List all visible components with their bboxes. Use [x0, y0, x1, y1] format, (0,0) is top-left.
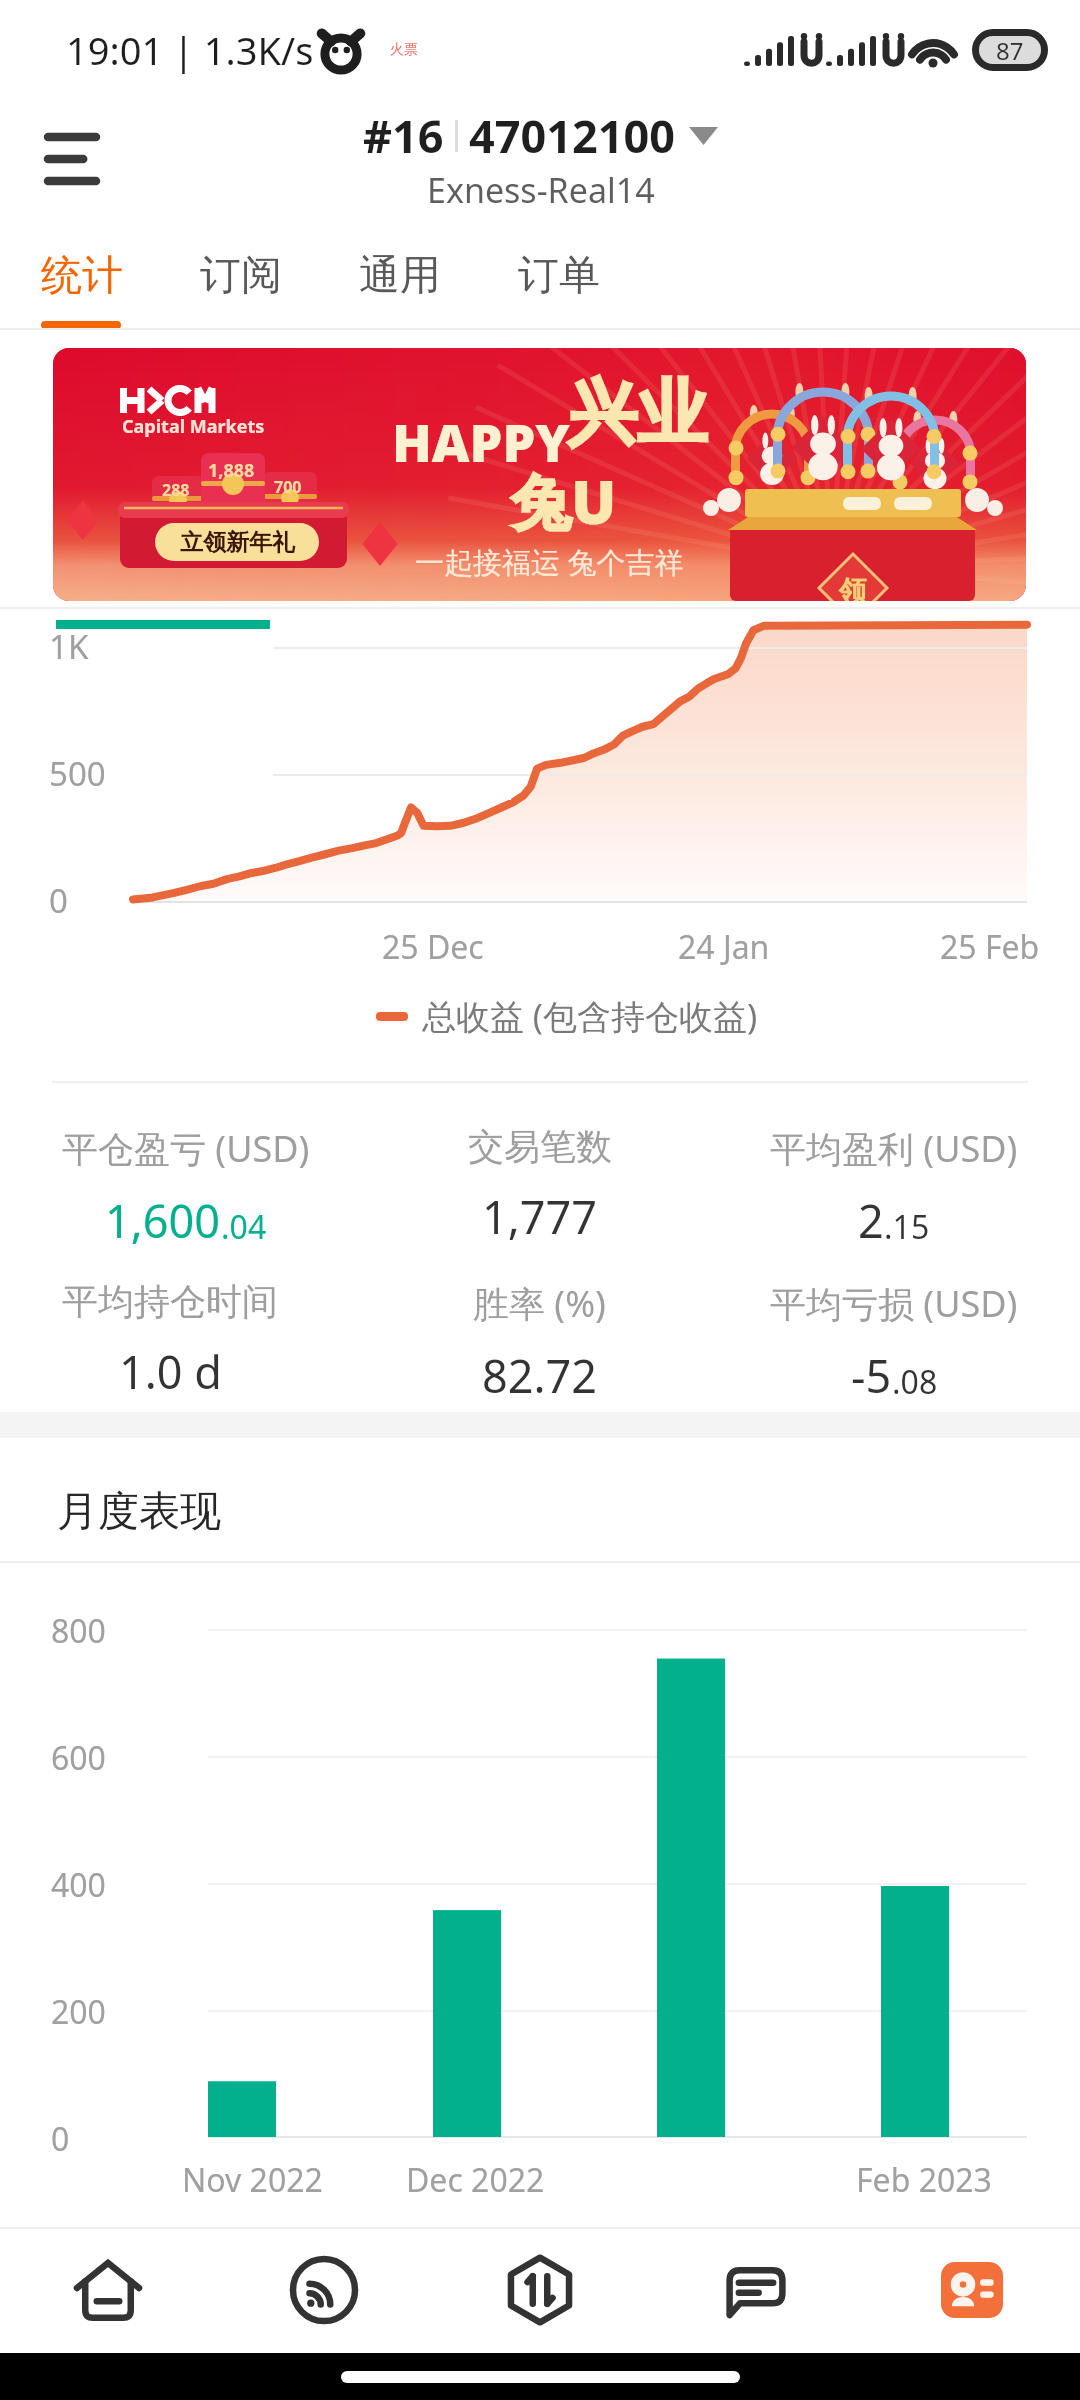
staticText: 平均持仓时间 [62, 1279, 278, 1324]
button[interactable]: Home [0, 2228, 216, 2352]
staticText: .04 [221, 1205, 267, 1249]
staticText: Feb 2023 [856, 2158, 992, 2202]
staticText: 400 [51, 1863, 106, 1907]
staticText: 25 Feb [940, 925, 1040, 969]
staticText: 1K [49, 624, 89, 669]
staticText: Capital Markets [122, 414, 265, 439]
staticText: 订阅 [200, 250, 282, 302]
staticText: 统计 [41, 250, 123, 302]
button[interactable]: 通用 [359, 218, 479, 330]
staticText: Exness-Real14 [427, 167, 655, 213]
staticText: 火票 [390, 41, 418, 59]
staticText: 1,600 [105, 1190, 221, 1251]
staticText: 总收益 (包含持仓收益) [422, 993, 758, 1039]
staticText: Dec 2022 [406, 2158, 545, 2202]
staticText: Nov 2022 [182, 2158, 323, 2202]
staticText: 平仓盈亏 (USD) [62, 1124, 310, 1173]
staticText: 平均亏损 (USD) [770, 1279, 1018, 1328]
staticText: 800 [51, 1609, 106, 1653]
staticText: 交易笔数 [468, 1124, 612, 1169]
button[interactable]: Feed [216, 2228, 432, 2352]
staticText: 1.0 d [119, 1341, 222, 1402]
staticText: 领 [839, 574, 867, 601]
staticText: 19:01 | 1.3K/s [66, 24, 314, 76]
button[interactable]: Trade [432, 2228, 648, 2352]
staticText: HAPPY [392, 406, 570, 477]
button[interactable]: 立领新年礼 [155, 523, 319, 561]
staticText: 288 [162, 479, 190, 501]
staticText: 立领新年礼 [180, 528, 295, 557]
button[interactable]: 订阅 [200, 218, 320, 330]
staticText: 0 [51, 2117, 70, 2161]
staticText: 24 Jan [678, 925, 770, 969]
button[interactable]: #16 [363, 105, 718, 213]
staticText: -5 [851, 1345, 892, 1406]
staticText: 胜率 (%) [473, 1279, 606, 1328]
staticText: 700 [274, 476, 302, 498]
staticText: 2 [858, 1190, 884, 1251]
staticText: 月度表现 [57, 1486, 221, 1538]
staticText: 47012100 [469, 105, 675, 166]
staticText: 0 [49, 878, 68, 923]
staticText: 订单 [518, 250, 600, 302]
button[interactable]: Menu [24, 111, 120, 207]
staticText: 通用 [359, 250, 441, 302]
staticText: 500 [49, 751, 106, 796]
staticText: 平均盈利 (USD) [770, 1124, 1018, 1173]
staticText: 200 [51, 1990, 106, 2034]
button[interactable]: Chat [648, 2228, 864, 2352]
staticText: 1,777 [482, 1186, 598, 1247]
staticText: .08 [892, 1360, 938, 1404]
button[interactable]: 订单 [518, 218, 638, 330]
button[interactable]: 统计 [41, 218, 161, 330]
staticText: 25 Dec [382, 925, 484, 969]
staticText: 600 [51, 1736, 106, 1780]
staticText: .15 [884, 1205, 930, 1249]
staticText: 兔U [511, 460, 617, 542]
button[interactable]: Capital Markets [53, 348, 1026, 601]
staticText: 87 [996, 34, 1024, 67]
staticText: #16 [363, 105, 444, 166]
staticText: 一起接福运 兔个吉祥 [415, 542, 684, 582]
staticText: 兴业 [567, 370, 707, 458]
button[interactable]: Profile [864, 2228, 1080, 2352]
staticText: 1,888 [208, 458, 255, 483]
staticText: 82.72 [482, 1345, 598, 1406]
